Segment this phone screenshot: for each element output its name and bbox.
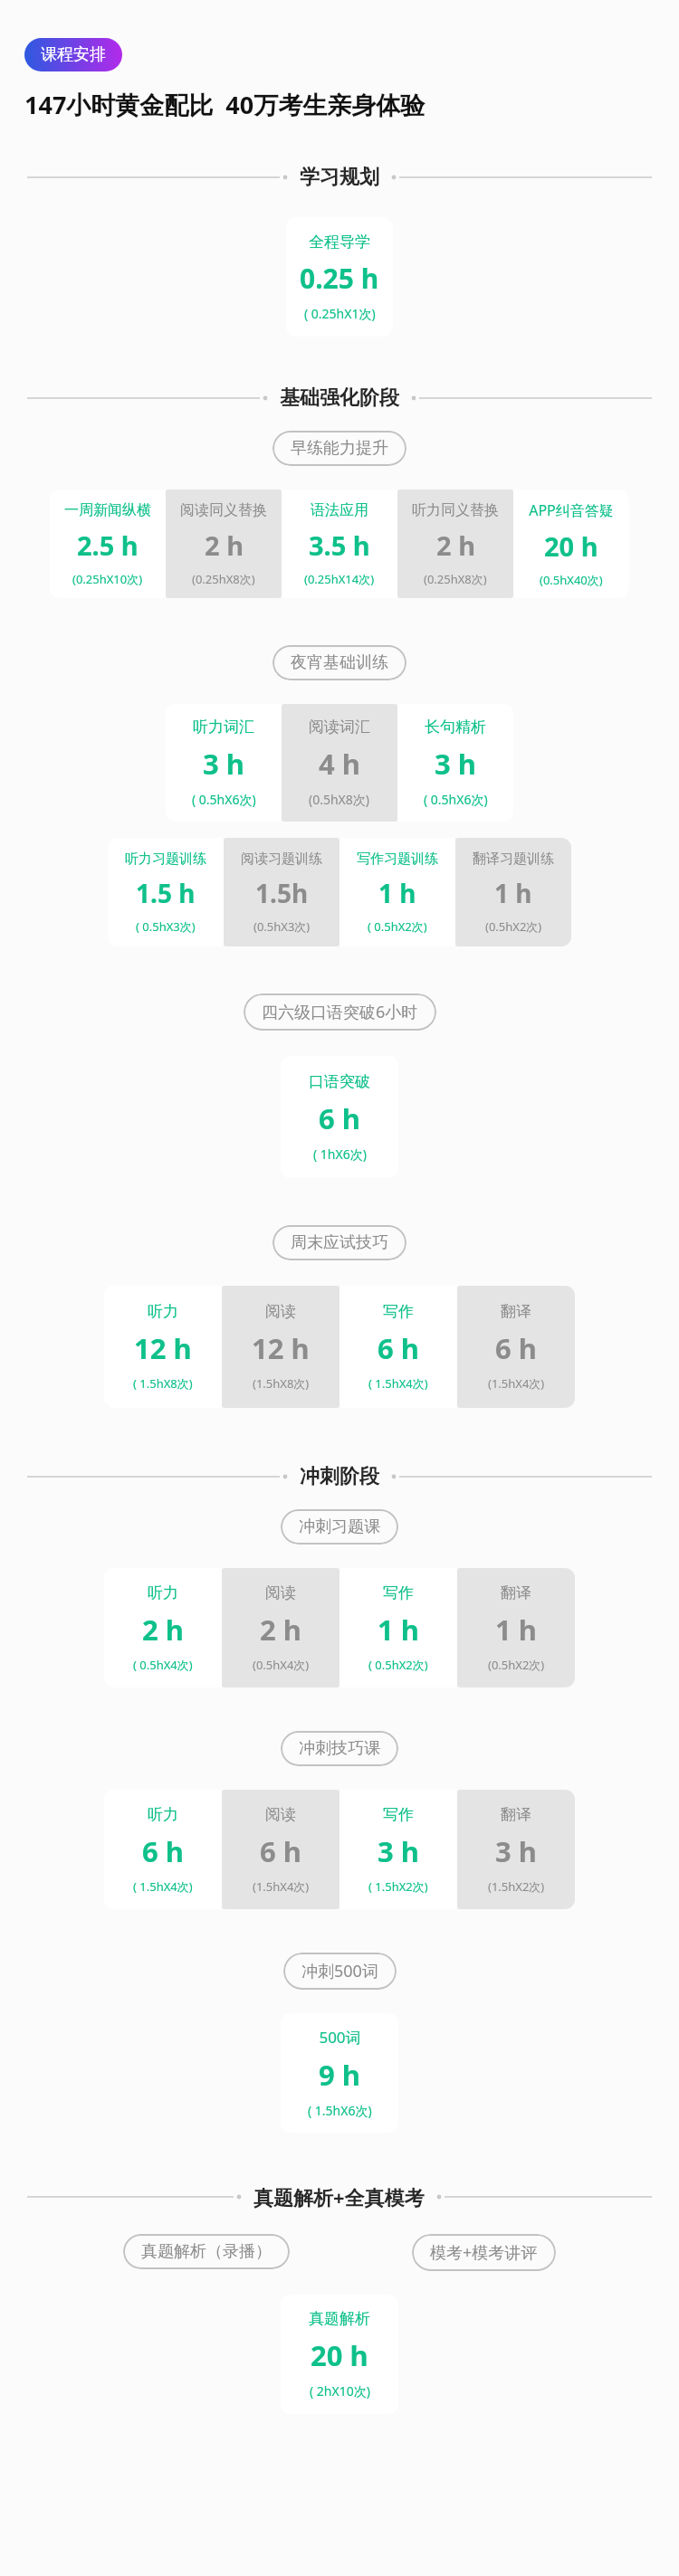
staticText: 语法应用 <box>311 501 368 519</box>
staticText: 阅读 <box>265 1583 296 1602</box>
staticText: (0.25hX8次) <box>192 571 255 587</box>
button[interactable]: 冲刺习题课 <box>281 1509 398 1545</box>
button[interactable]: 听力同义替换 <box>397 490 513 598</box>
staticText: ( 0.5hX6次) <box>192 791 256 808</box>
staticText: (0.25hX10次) <box>72 571 143 587</box>
staticText: 1.5h <box>255 876 309 910</box>
staticText: (1.5hX4次) <box>253 1878 310 1895</box>
staticText: 冲刺习题课 <box>299 1516 380 1537</box>
staticText: 翻译 <box>501 1583 531 1602</box>
button[interactable]: 阅读 <box>222 1568 339 1687</box>
staticText: ( 1.5hX4次) <box>368 1375 428 1392</box>
button[interactable]: 阅读词汇 <box>282 704 397 822</box>
staticText: 阅读同义替换 <box>180 501 267 519</box>
staticText: 周末应试技巧 <box>291 1232 388 1253</box>
button[interactable]: 冲刺技巧课 <box>281 1731 398 1766</box>
staticText: ( 0.5hX3次) <box>136 918 196 935</box>
button[interactable]: 课程安排 <box>24 38 122 71</box>
staticText: 阅读习题训练 <box>241 851 322 868</box>
staticText: 口语突破 <box>309 1072 370 1091</box>
button[interactable]: 听力 <box>104 1790 222 1909</box>
staticText: 6 h <box>260 1832 301 1870</box>
button[interactable]: 一周新闻纵横 <box>50 490 166 598</box>
staticText: (0.25hX8次) <box>424 571 487 587</box>
staticText: 6 h <box>495 1329 537 1367</box>
staticText: ( 1.5hX2次) <box>368 1878 428 1895</box>
staticText: 听力同义替换 <box>412 501 499 519</box>
button[interactable]: 翻译 <box>457 1286 575 1408</box>
staticText: 真题解析 <box>309 2309 370 2328</box>
button[interactable]: 真题解析 <box>281 2295 398 2414</box>
button[interactable]: 听力 <box>104 1568 222 1687</box>
staticText: 听力 <box>148 1583 178 1602</box>
staticText: (0.5hX40次) <box>540 572 603 588</box>
button[interactable]: 冲刺500词 <box>283 1953 397 1990</box>
button[interactable]: 早练能力提升 <box>273 431 406 466</box>
staticText: 3 h <box>378 1832 419 1870</box>
staticText: 2 h <box>142 1611 184 1649</box>
button[interactable]: 长句精析 <box>397 704 513 822</box>
button[interactable]: 阅读习题训练 <box>224 838 339 946</box>
staticText: 基础强化阶段 <box>280 385 399 411</box>
button[interactable]: 阅读同义替换 <box>166 490 282 598</box>
staticText: 6 h <box>142 1832 184 1870</box>
staticText: 四六级口语突破6小时 <box>262 1001 418 1023</box>
button[interactable]: 真题解析（录播） <box>123 2234 290 2269</box>
staticText: 听力 <box>148 1805 178 1824</box>
staticText: 阅读词汇 <box>309 718 370 737</box>
staticText: ( 1.5hX8次) <box>133 1375 193 1392</box>
button[interactable]: 写作 <box>339 1568 457 1687</box>
staticText: ( 1.5hX6次) <box>308 2102 372 2119</box>
staticText: 早练能力提升 <box>291 438 388 459</box>
staticText: 2 h <box>205 528 244 563</box>
staticText: 写作习题训练 <box>357 851 438 868</box>
staticText: 学习规划 <box>300 165 379 190</box>
staticText: (0.25hX14次) <box>304 571 375 587</box>
button[interactable]: 听力词汇 <box>166 704 282 822</box>
button[interactable]: 阅读 <box>222 1790 339 1909</box>
button[interactable]: 阅读 <box>222 1286 339 1408</box>
button[interactable]: 模考+模考讲评 <box>412 2234 556 2271</box>
staticText: 20 h <box>544 528 598 564</box>
button[interactable]: 夜宵基础训练 <box>273 645 406 680</box>
button[interactable]: APP纠音答疑 <box>513 490 629 598</box>
button[interactable]: 500词 <box>281 2013 398 2133</box>
staticText: 翻译 <box>501 1302 531 1321</box>
staticText: (1.5hX8次) <box>253 1375 310 1392</box>
staticText: 6 h <box>319 1099 360 1137</box>
button[interactable]: 翻译 <box>457 1790 575 1909</box>
button[interactable]: 四六级口语突破6小时 <box>244 993 436 1031</box>
staticText: APP纠音答疑 <box>529 500 614 520</box>
staticText: 3 h <box>435 745 476 783</box>
staticText: 0.25 h <box>300 260 379 297</box>
staticText: (1.5hX4次) <box>488 1375 545 1392</box>
button[interactable]: 语法应用 <box>282 490 397 598</box>
staticText: (1.5hX2次) <box>488 1878 545 1895</box>
button[interactable]: 翻译习题训练 <box>455 838 571 946</box>
button[interactable]: 写作 <box>339 1286 457 1408</box>
staticText: 写作 <box>383 1302 414 1321</box>
staticText: 2 h <box>436 528 475 563</box>
staticText: 2 h <box>260 1611 301 1649</box>
staticText: 听力习题训练 <box>125 851 206 868</box>
staticText: 翻译 <box>501 1805 531 1824</box>
button[interactable]: 周末应试技巧 <box>273 1225 406 1260</box>
button[interactable]: 听力习题训练 <box>108 838 224 946</box>
button[interactable]: 写作 <box>339 1790 457 1909</box>
button[interactable]: 写作习题训练 <box>339 838 455 946</box>
staticText: (0.5hX3次) <box>253 918 311 935</box>
button[interactable]: 翻译 <box>457 1568 575 1687</box>
button[interactable]: 听力 <box>104 1286 222 1408</box>
staticText: 3 h <box>203 745 244 783</box>
staticText: 真题解析+全真模考 <box>253 2183 425 2210</box>
button[interactable]: 口语突破 <box>281 1056 398 1178</box>
staticText: 2.5 h <box>77 528 139 563</box>
staticText: 500词 <box>319 2027 361 2048</box>
staticText: 3 h <box>495 1832 537 1870</box>
staticText: (0.5hX8次) <box>309 791 370 808</box>
staticText: 冲刺500词 <box>301 1960 378 1982</box>
staticText: 冲刺阶段 <box>300 1464 379 1489</box>
button[interactable]: 全程导学 <box>286 217 393 337</box>
staticText: 1 h <box>494 876 532 910</box>
staticText: 3.5 h <box>309 528 370 563</box>
